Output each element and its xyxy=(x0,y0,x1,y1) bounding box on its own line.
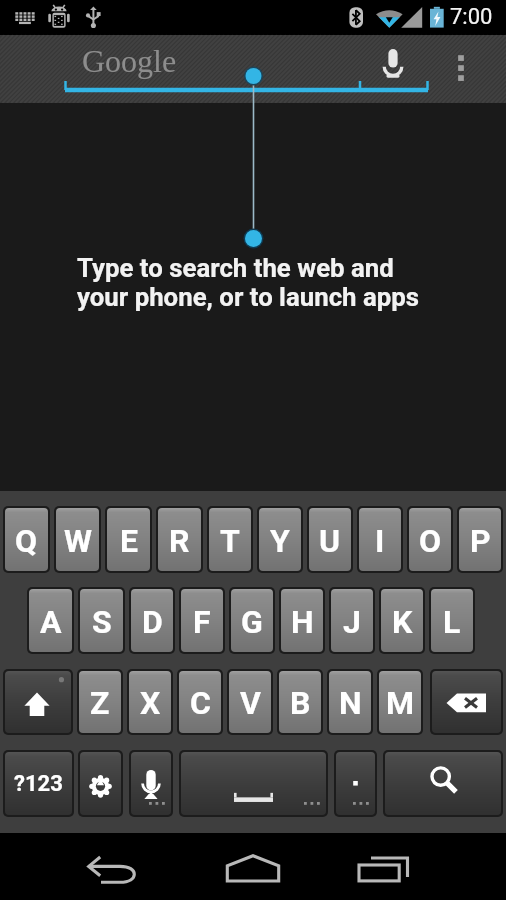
button[interactable]: Back xyxy=(75,833,147,900)
button[interactable]: G xyxy=(231,589,273,652)
staticText: D xyxy=(142,603,163,641)
button[interactable]: U xyxy=(309,508,351,571)
staticText: X xyxy=(140,684,161,722)
button[interactable]: Settings xyxy=(80,752,121,815)
button[interactable]: J xyxy=(331,589,373,652)
staticText: J xyxy=(343,603,361,641)
button[interactable]: Delete xyxy=(432,671,501,733)
staticText: S xyxy=(92,603,112,641)
staticText: C xyxy=(190,684,211,722)
button[interactable]: Home xyxy=(217,833,289,900)
staticText: O xyxy=(419,522,442,560)
button[interactable]: V xyxy=(229,671,271,733)
button[interactable]: Shift xyxy=(5,671,71,733)
button[interactable]: Voice search xyxy=(371,42,415,86)
staticText: P xyxy=(470,522,491,560)
button[interactable]: N xyxy=(329,671,371,733)
staticText: R xyxy=(169,522,190,560)
button[interactable]: M xyxy=(379,671,421,733)
staticText: 7:00 xyxy=(450,4,493,30)
button[interactable]: A xyxy=(29,589,72,652)
button[interactable]: F xyxy=(181,589,223,652)
button[interactable]: W xyxy=(56,508,99,571)
button[interactable]: Voice input xyxy=(131,752,171,815)
button[interactable]: ?123 xyxy=(5,752,72,815)
staticText: G xyxy=(241,603,263,641)
button[interactable]: B xyxy=(279,671,321,733)
staticText: K xyxy=(392,603,413,641)
staticText: V xyxy=(240,684,261,722)
button[interactable]: Recent apps xyxy=(359,833,431,900)
staticText: Type to search the web and your phone, o… xyxy=(77,253,420,312)
staticText: M xyxy=(386,684,415,722)
button[interactable]: Z xyxy=(79,671,121,733)
button[interactable]: Space xyxy=(181,752,326,815)
button[interactable]: R xyxy=(158,508,201,571)
staticText: Z xyxy=(90,684,110,722)
button[interactable]: K xyxy=(381,589,423,652)
staticText: A xyxy=(40,603,62,641)
staticText: I xyxy=(375,522,385,560)
staticText: Y xyxy=(270,522,290,560)
button[interactable]: O xyxy=(409,508,451,571)
staticText: F xyxy=(193,603,211,641)
button[interactable]: S xyxy=(80,589,123,652)
button[interactable]: D xyxy=(131,589,173,652)
button[interactable]: E xyxy=(107,508,150,571)
button[interactable]: H xyxy=(281,589,323,652)
button[interactable]: C xyxy=(179,671,221,733)
button[interactable]: Q xyxy=(5,508,48,571)
button[interactable]: I xyxy=(359,508,401,571)
button[interactable]: Period xyxy=(336,752,375,815)
staticText: W xyxy=(64,522,92,560)
staticText: Q xyxy=(15,522,38,560)
staticText: T xyxy=(220,522,240,560)
staticText: U xyxy=(319,522,341,560)
button[interactable]: X xyxy=(129,671,171,733)
button[interactable]: Y xyxy=(259,508,301,571)
button[interactable]: Search xyxy=(385,752,501,815)
staticText: E xyxy=(120,522,138,560)
button[interactable]: L xyxy=(431,589,473,652)
staticText: Google xyxy=(82,43,177,78)
button[interactable]: T xyxy=(209,508,251,571)
button[interactable]: P xyxy=(459,508,501,571)
staticText: ?123 xyxy=(14,771,63,797)
staticText: L xyxy=(443,603,461,641)
button[interactable]: More options xyxy=(439,42,483,86)
staticText: H xyxy=(291,603,314,641)
staticText: N xyxy=(339,684,362,722)
staticText: B xyxy=(290,684,311,722)
